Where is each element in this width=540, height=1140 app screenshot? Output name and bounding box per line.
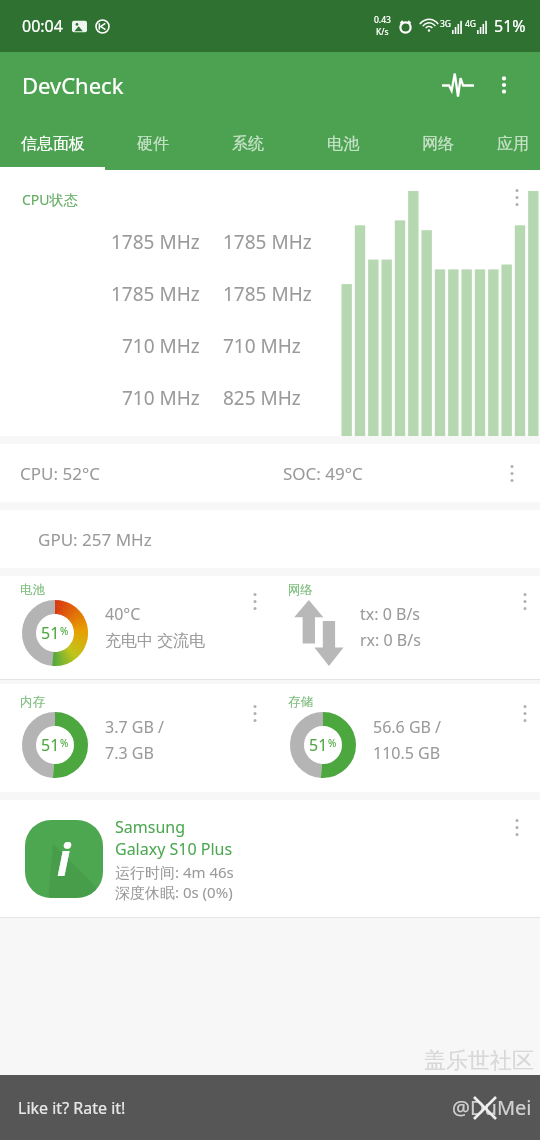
button[interactable]: More options xyxy=(502,180,532,214)
staticText: 0.43 xyxy=(374,14,391,26)
staticText: DevCheck xyxy=(22,70,124,100)
staticText: 51 xyxy=(309,734,328,756)
staticText: 7.3 GB xyxy=(105,742,154,764)
button[interactable]: 网络 xyxy=(270,576,540,680)
staticText: 1785 MHz xyxy=(223,229,312,255)
button[interactable]: Monitor xyxy=(434,61,482,109)
button[interactable]: More options xyxy=(510,584,540,618)
button[interactable]: More options xyxy=(497,456,527,490)
staticText: 710 MHz xyxy=(122,385,200,411)
staticText: 网络 xyxy=(422,134,454,154)
staticText: 710 MHz xyxy=(223,333,301,359)
staticText: GPU: 257 MHz xyxy=(38,528,152,551)
button[interactable]: More options xyxy=(502,810,532,844)
staticText: 51 xyxy=(41,734,60,756)
staticText: 存储 xyxy=(288,694,313,710)
staticText: 1785 MHz xyxy=(111,281,200,307)
staticText: 4G xyxy=(465,18,477,30)
staticText: 内存 xyxy=(20,694,45,710)
staticText: 电池 xyxy=(327,134,359,154)
staticText: 51 xyxy=(41,622,60,644)
staticText: K/s xyxy=(376,26,389,38)
staticText: 710 MHz xyxy=(122,333,200,359)
staticText: Galaxy S10 Plus xyxy=(115,838,233,860)
button[interactable]: 信息面板 xyxy=(0,118,105,170)
staticText: 应用 xyxy=(497,134,529,154)
staticText: % xyxy=(60,624,69,638)
button[interactable]: More options xyxy=(482,63,526,107)
staticText: 硬件 xyxy=(137,134,169,154)
staticText: 3G xyxy=(440,18,452,30)
staticText: % xyxy=(328,736,337,750)
staticText: rx: 0 B/s xyxy=(360,629,421,651)
staticText: 网络 xyxy=(288,582,313,598)
button[interactable]: More options xyxy=(240,696,270,730)
staticText: 电池 xyxy=(20,582,45,598)
staticText: 1785 MHz xyxy=(111,229,200,255)
button[interactable]: Like it? Rate it! xyxy=(0,1075,126,1140)
button[interactable]: CPU状态 xyxy=(0,170,540,436)
staticText: 运行时间: 4m 46s xyxy=(115,862,234,882)
staticText: 信息面板 xyxy=(21,134,85,154)
staticText: 系统 xyxy=(232,134,264,154)
staticText: SOC: 49°C xyxy=(283,462,363,485)
button[interactable]: CPU: 52°C xyxy=(0,444,540,502)
staticText: 充电中 交流电 xyxy=(105,629,206,651)
staticText: 1785 MHz xyxy=(223,281,312,307)
button[interactable]: 硬件 xyxy=(105,118,200,170)
staticText: Like it? Rate it! xyxy=(18,1097,126,1119)
button[interactable]: i xyxy=(0,800,540,918)
staticText: 110.5 GB xyxy=(373,742,441,764)
staticText: tx: 0 B/s xyxy=(360,603,421,625)
button[interactable]: 内存 xyxy=(0,684,270,792)
staticText: 3.7 GB / xyxy=(105,716,164,738)
staticText: @DuMei xyxy=(452,1094,532,1121)
button[interactable]: 电池 xyxy=(295,118,390,170)
staticText: % xyxy=(60,736,69,750)
button[interactable]: Close xyxy=(464,1087,506,1129)
staticText: 40°C xyxy=(105,603,141,625)
staticText: 825 MHz xyxy=(223,385,301,411)
staticText: i xyxy=(57,829,71,889)
staticText: 00:04 xyxy=(22,15,63,37)
button[interactable]: 网络 xyxy=(390,118,485,170)
button[interactable]: 系统 xyxy=(200,118,295,170)
staticText: 盖乐世社区 xyxy=(424,1047,534,1075)
button[interactable]: More options xyxy=(240,584,270,618)
button[interactable]: 存储 xyxy=(270,684,540,792)
staticText: CPU: 52°C xyxy=(20,462,100,485)
staticText: 深度休眠: 0s (0%) xyxy=(115,882,233,902)
button[interactable]: 内存 xyxy=(0,684,540,792)
button[interactable]: 电池 xyxy=(0,576,540,680)
button[interactable]: More options xyxy=(510,696,540,730)
staticText: CPU状态 xyxy=(22,190,78,209)
button[interactable]: GPU: 257 MHz xyxy=(0,510,540,568)
staticText: 51% xyxy=(494,15,526,37)
staticText: Samsung xyxy=(115,816,186,838)
button[interactable]: 电池 xyxy=(0,576,270,680)
button[interactable]: 应用 xyxy=(485,118,540,170)
staticText: 56.6 GB / xyxy=(373,716,442,738)
